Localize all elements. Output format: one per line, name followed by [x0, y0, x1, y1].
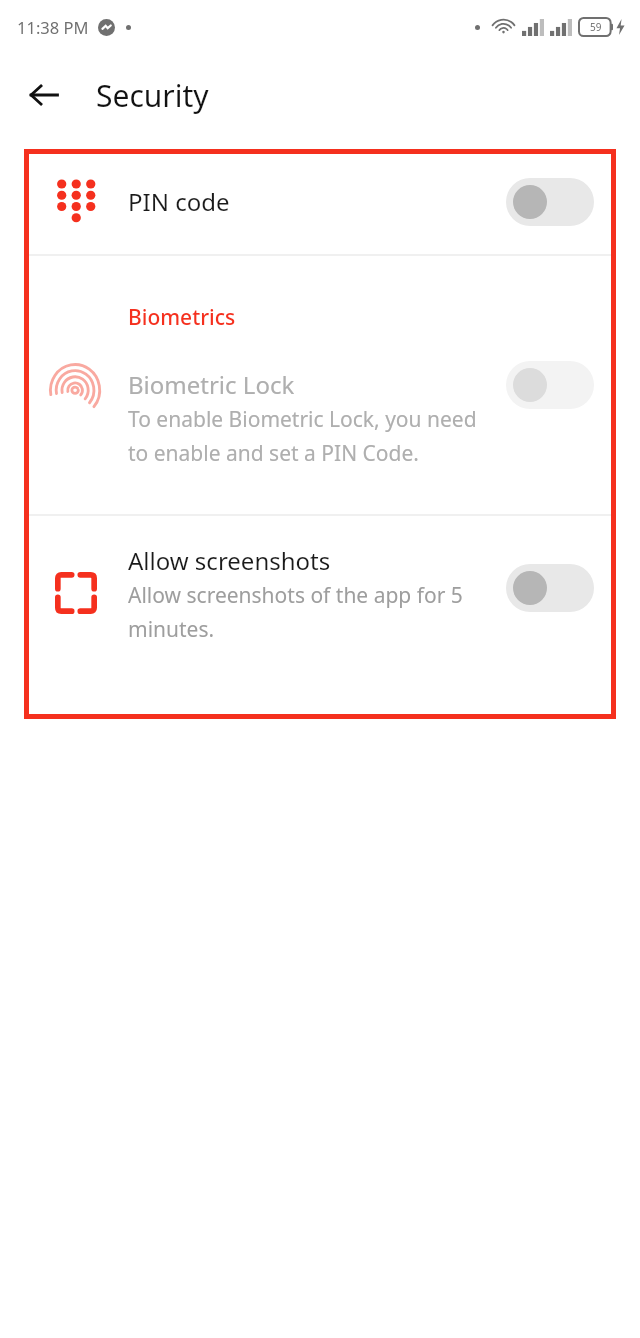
staticText: PIN code — [128, 185, 506, 218]
button[interactable]: Toggle — [506, 361, 594, 409]
button[interactable]: Biometrics — [24, 256, 616, 514]
staticText: Allow screenshots of the app for 5 minut… — [128, 581, 494, 643]
staticText: Biometric Lock — [128, 368, 295, 401]
button[interactable]: Allow screenshots — [24, 516, 616, 719]
button[interactable]: Toggle — [506, 178, 594, 226]
staticText: Allow screenshots — [128, 544, 331, 577]
staticText: 59 — [590, 20, 602, 34]
staticText: 11:38 PM — [17, 16, 89, 38]
staticText: Security — [96, 75, 209, 116]
staticText: Biometrics — [128, 303, 236, 332]
button[interactable]: Back — [16, 67, 72, 123]
button[interactable]: PIN code — [24, 149, 616, 254]
button[interactable]: Toggle — [506, 564, 594, 612]
staticText: To enable Biometric Lock, you need to en… — [128, 405, 496, 467]
